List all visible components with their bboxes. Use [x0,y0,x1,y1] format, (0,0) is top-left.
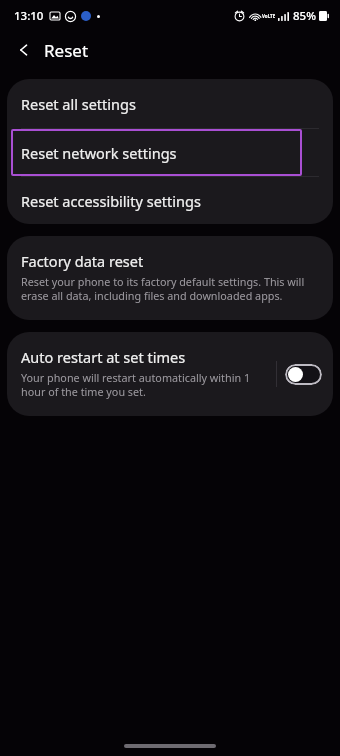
button[interactable]: Reset accessibility settings [7,177,333,224]
button[interactable]: Auto restart at set times [7,332,276,416]
button[interactable]: Auto restart at set times toggle [285,364,322,385]
staticText: VoLTE [262,13,276,19]
staticText: Reset your phone to its factory default … [21,274,319,303]
button[interactable]: Reset all settings [7,79,333,128]
staticText: Factory data reset [21,251,144,271]
button[interactable]: Back [8,34,40,66]
staticText: Reset all settings [21,94,136,114]
staticText: Reset [44,39,89,62]
staticText: 85% [293,8,316,24]
staticText: Auto restart at set times [21,347,186,367]
staticText: Reset accessibility settings [21,191,201,211]
staticText: Your phone will restart automatically wi… [21,370,270,399]
button[interactable]: Factory data reset [7,236,333,320]
staticText: Reset network settings [21,143,177,163]
button[interactable]: Reset network settings [11,129,302,176]
staticText: 13:10 [14,8,44,24]
